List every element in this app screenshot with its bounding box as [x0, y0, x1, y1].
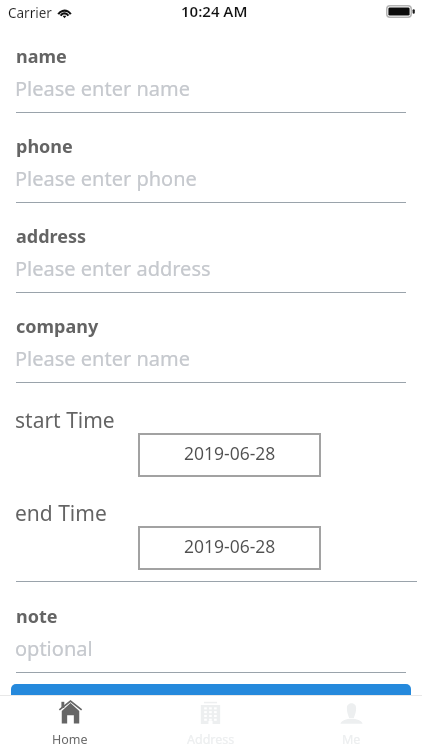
staticText: name: [16, 44, 67, 69]
staticText: phone: [16, 134, 73, 159]
staticText: note: [16, 604, 58, 629]
button[interactable]: address: [0, 203, 422, 293]
staticText: address: [16, 224, 87, 249]
button[interactable]: 2019-06-28: [138, 433, 321, 477]
button[interactable]: note: [0, 583, 422, 673]
staticText: start Time: [15, 406, 115, 435]
staticText: company: [16, 314, 99, 339]
staticText: optional: [15, 635, 93, 662]
staticText: 2019-06-28: [184, 441, 276, 465]
button[interactable]: Submit: [11, 684, 411, 730]
other: Battery: [386, 5, 415, 18]
staticText: Please enter name: [15, 345, 190, 372]
staticText: Me: [342, 731, 361, 748]
staticText: Please enter address: [15, 255, 211, 282]
staticText: Address: [187, 731, 235, 748]
staticText: 2019-06-28: [184, 534, 276, 558]
other: Wi-Fi: [57, 6, 72, 17]
button[interactable]: phone: [0, 113, 422, 203]
button[interactable]: name: [0, 23, 422, 113]
button[interactable]: Home: [0, 696, 140, 750]
button[interactable]: Address: [140, 696, 281, 750]
staticText: Carrier: [8, 4, 52, 22]
staticText: 10:24 AM: [181, 1, 248, 21]
staticText: end Time: [15, 499, 107, 528]
staticText: Home: [52, 731, 88, 748]
button[interactable]: 2019-06-28: [138, 526, 321, 570]
staticText: Please enter name: [15, 75, 190, 102]
button[interactable]: company: [0, 293, 422, 383]
staticText: Please enter phone: [15, 165, 197, 192]
button[interactable]: Me: [281, 696, 422, 750]
